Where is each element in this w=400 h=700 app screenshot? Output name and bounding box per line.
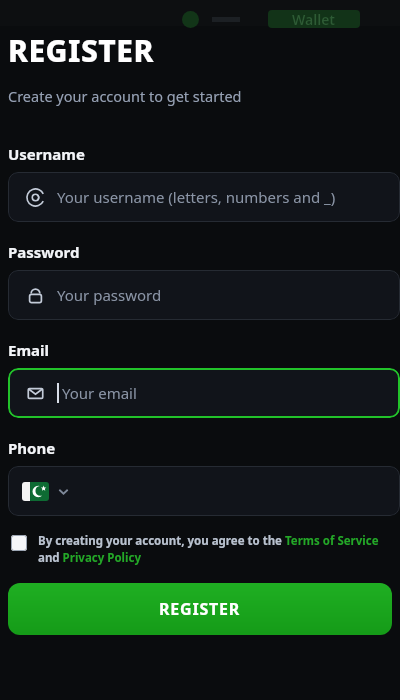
staticText: Your username (letters, numbers and _) xyxy=(57,187,336,207)
staticText: REGISTER xyxy=(8,30,154,71)
other: Accept terms checkbox xyxy=(11,535,27,551)
staticText: By creating your account, you agree to t… xyxy=(38,533,400,566)
staticText: Username xyxy=(8,144,85,164)
staticText: Your password xyxy=(57,285,162,305)
button[interactable]: Accept terms checkbox xyxy=(8,533,400,566)
button[interactable]: Your email xyxy=(8,368,400,418)
button[interactable]: Your username (letters, numbers and _) xyxy=(8,172,400,222)
staticText: Phone xyxy=(8,438,56,458)
button[interactable]: Your password xyxy=(8,270,400,320)
staticText: Create your account to get started xyxy=(8,86,242,106)
staticText: REGISTER xyxy=(159,598,241,620)
staticText: Password xyxy=(8,242,80,262)
staticText: Email xyxy=(8,340,49,360)
button[interactable]: REGISTER xyxy=(8,583,392,635)
staticText: Wallet xyxy=(292,10,336,28)
staticText: Your email xyxy=(62,383,137,403)
button[interactable]: Select country code xyxy=(8,466,400,516)
